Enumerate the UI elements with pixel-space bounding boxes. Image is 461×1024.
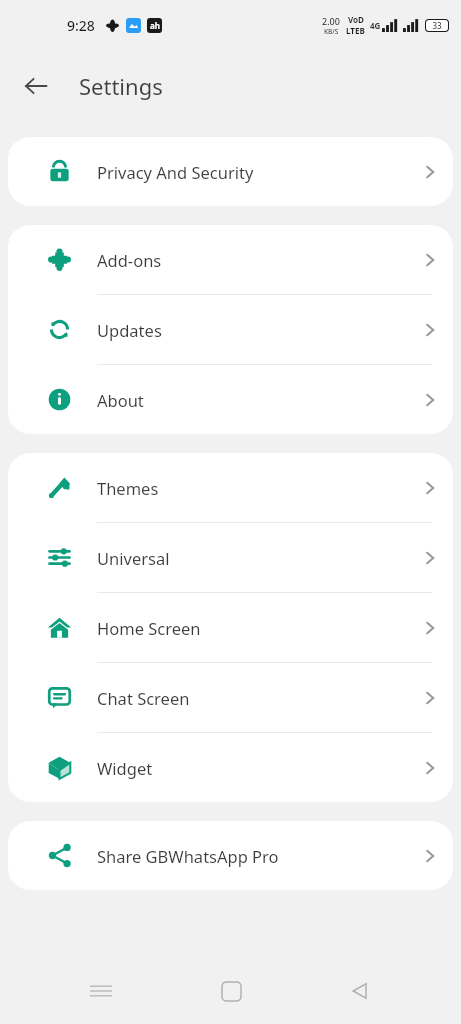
staticText: Updates	[97, 319, 162, 341]
button[interactable]: Widget	[8, 733, 453, 802]
staticText: VoD	[348, 14, 364, 25]
button[interactable]: Chat Screen	[8, 663, 453, 732]
staticText: About	[97, 389, 144, 411]
staticText: Home Screen	[97, 617, 201, 639]
staticText: 4G	[370, 20, 381, 31]
button[interactable]: About	[8, 365, 453, 434]
staticText: ah	[150, 20, 160, 31]
staticText: 2.00	[322, 15, 340, 27]
staticText: Themes	[97, 477, 159, 499]
button[interactable]: Home Screen	[8, 593, 453, 662]
staticText: Share GBWhatsApp Pro	[97, 845, 279, 867]
button[interactable]: Themes	[8, 453, 453, 522]
button[interactable]: Back	[14, 64, 58, 108]
staticText: Chat Screen	[97, 687, 190, 709]
staticText: Add-ons	[97, 249, 162, 271]
staticText: Universal	[97, 547, 170, 569]
staticText: KB/S	[324, 27, 339, 36]
staticText: 33	[432, 20, 442, 31]
button[interactable]: Recent apps	[73, 963, 129, 1019]
button[interactable]: Privacy And Security	[8, 137, 453, 206]
button[interactable]: Add-ons	[8, 225, 453, 294]
button[interactable]: Share GBWhatsApp Pro	[8, 821, 453, 890]
staticText: LTEB	[346, 25, 365, 36]
staticText: Settings	[79, 71, 163, 101]
button[interactable]: Updates	[8, 295, 453, 364]
staticText: Privacy And Security	[97, 161, 254, 183]
button[interactable]: Home	[203, 963, 259, 1019]
staticText: 9:28	[67, 16, 95, 35]
staticText: Widget	[97, 757, 153, 779]
button[interactable]: Universal	[8, 523, 453, 592]
button[interactable]: Back	[332, 963, 388, 1019]
